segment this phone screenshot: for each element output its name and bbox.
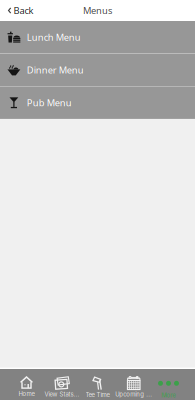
staticText: More bbox=[161, 392, 175, 399]
button[interactable]: Home bbox=[9, 369, 44, 400]
staticText: Tee Time bbox=[85, 391, 109, 398]
staticText: Pub Menu bbox=[27, 97, 72, 109]
button[interactable]: More bbox=[151, 369, 186, 400]
staticText: Dinner Menu bbox=[27, 64, 84, 76]
staticText: View Stats... bbox=[44, 391, 79, 398]
button[interactable]: Upcoming ... bbox=[115, 369, 151, 400]
staticText: Lunch Menu bbox=[27, 31, 81, 43]
button[interactable]: Dinner Menu bbox=[0, 54, 195, 86]
button[interactable]: Back bbox=[0, 1, 33, 20]
staticText: Upcoming ... bbox=[115, 391, 152, 398]
button[interactable]: View Stats... bbox=[44, 369, 80, 400]
staticText: Home bbox=[18, 390, 34, 397]
staticText: Back bbox=[13, 4, 33, 17]
button[interactable]: Tee Time bbox=[80, 369, 115, 400]
button[interactable]: Lunch Menu bbox=[0, 21, 195, 53]
staticText: Menus bbox=[83, 4, 112, 17]
button[interactable]: Pub Menu bbox=[0, 87, 195, 119]
